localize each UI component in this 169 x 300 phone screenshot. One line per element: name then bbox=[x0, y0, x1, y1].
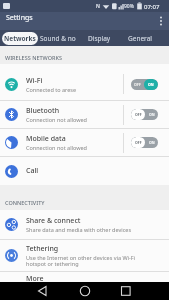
button[interactable]: OFF bbox=[131, 137, 158, 148]
button[interactable] bbox=[0, 282, 57, 300]
staticText: Display bbox=[88, 34, 111, 43]
staticText: OFF bbox=[135, 140, 142, 145]
staticText: More bbox=[26, 274, 44, 282]
staticText: Wi-Fi bbox=[26, 76, 43, 86]
staticText: WIRELESS NETWORKS bbox=[5, 54, 62, 61]
staticText: Bluetooth bbox=[26, 106, 60, 116]
button[interactable]: Call bbox=[0, 157, 169, 185]
staticText: OFF bbox=[135, 112, 142, 117]
staticText: ON bbox=[149, 140, 155, 145]
staticText: Mobile data bbox=[26, 134, 66, 144]
button[interactable]: Tethering bbox=[0, 240, 169, 271]
staticText: General bbox=[128, 34, 152, 43]
button[interactable] bbox=[159, 16, 163, 26]
staticText: 07:07 bbox=[144, 3, 160, 11]
staticText: Tethering bbox=[26, 244, 59, 254]
staticText: Share data and media with other devices bbox=[26, 226, 132, 233]
button[interactable]: Sound & no bbox=[38, 30, 78, 46]
staticText: Use the Internet on other devices via Wi… bbox=[26, 254, 136, 267]
staticText: CONNECTIVITY bbox=[5, 199, 45, 206]
button[interactable]: OFF bbox=[131, 79, 158, 90]
button[interactable]: Wi-Fi bbox=[0, 64, 169, 100]
staticText: Connection not allowed bbox=[26, 116, 87, 123]
staticText: N bbox=[96, 3, 100, 10]
staticText: 90% bbox=[124, 3, 134, 10]
button[interactable]: Share & connect bbox=[0, 210, 169, 239]
staticText: Share & connect bbox=[26, 216, 81, 226]
button[interactable]: Display bbox=[78, 30, 120, 46]
staticText: ON bbox=[149, 112, 155, 117]
button[interactable] bbox=[57, 282, 113, 300]
staticText: Networks bbox=[4, 34, 36, 43]
staticText: OFF bbox=[134, 82, 141, 87]
staticText: Settings bbox=[6, 13, 33, 23]
button[interactable]: Networks bbox=[2, 32, 38, 45]
button[interactable]: More bbox=[0, 272, 169, 282]
button[interactable]: Mobile data bbox=[0, 129, 169, 156]
staticText: ON bbox=[148, 82, 154, 87]
button[interactable] bbox=[113, 282, 169, 300]
button[interactable]: General bbox=[120, 30, 160, 46]
staticText: Connected to arese bbox=[26, 86, 77, 93]
staticText: Connection not allowed bbox=[26, 144, 87, 151]
button[interactable]: Bluetooth bbox=[0, 101, 169, 128]
staticText: Sound & no bbox=[40, 34, 76, 43]
staticText: Call bbox=[26, 166, 39, 176]
button[interactable]: OFF bbox=[131, 109, 158, 120]
